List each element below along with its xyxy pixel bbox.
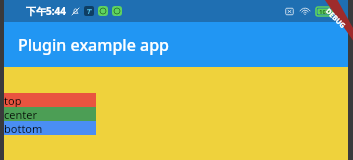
staticText: center <box>4 107 37 121</box>
button[interactable]: bottom <box>4 121 96 135</box>
staticText: Plugin example app <box>18 34 169 56</box>
button[interactable]: center <box>4 107 96 121</box>
button[interactable]: top <box>4 93 96 107</box>
staticText: DEBUG <box>323 7 348 31</box>
other: Debug banner <box>301 0 353 52</box>
button[interactable]: Plugin example app <box>4 22 348 67</box>
staticText: top <box>4 93 22 107</box>
staticText: 100 <box>319 8 330 16</box>
staticText: 下午5:44 <box>26 4 66 18</box>
staticText: bottom <box>4 121 43 135</box>
